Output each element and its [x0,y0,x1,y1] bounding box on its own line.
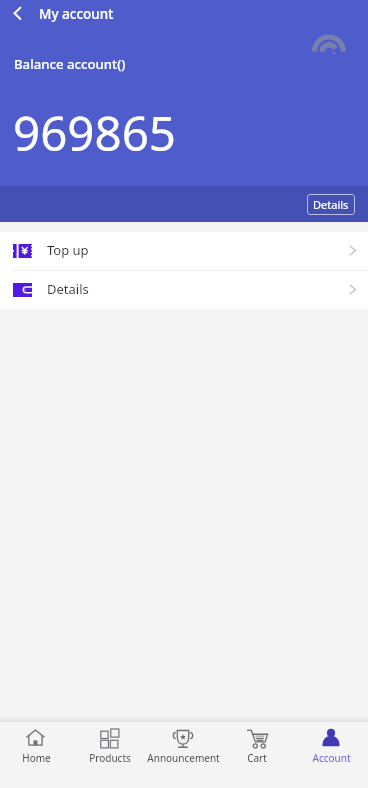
button[interactable]: Cart [220,722,294,765]
staticText: Home [22,751,51,765]
staticText: Details [47,280,89,298]
button[interactable]: Products [73,722,146,765]
staticText: Account [312,751,351,765]
button[interactable]: Details [307,194,355,215]
button[interactable]: Home [0,722,73,765]
button[interactable]: Account [294,722,368,765]
staticText: Products [89,751,131,765]
staticText: Top up [47,241,89,259]
staticText: Cart [247,751,267,765]
button[interactable]: Back [0,0,38,28]
staticText: Details [313,197,349,212]
staticText: Announcement [147,751,220,765]
staticText: 969865 [13,100,177,165]
staticText: My account [39,5,114,23]
button[interactable]: Details [0,271,368,309]
button[interactable]: Top up [0,232,368,270]
staticText: Balance account() [14,55,126,73]
button[interactable]: Announcement [146,722,220,765]
